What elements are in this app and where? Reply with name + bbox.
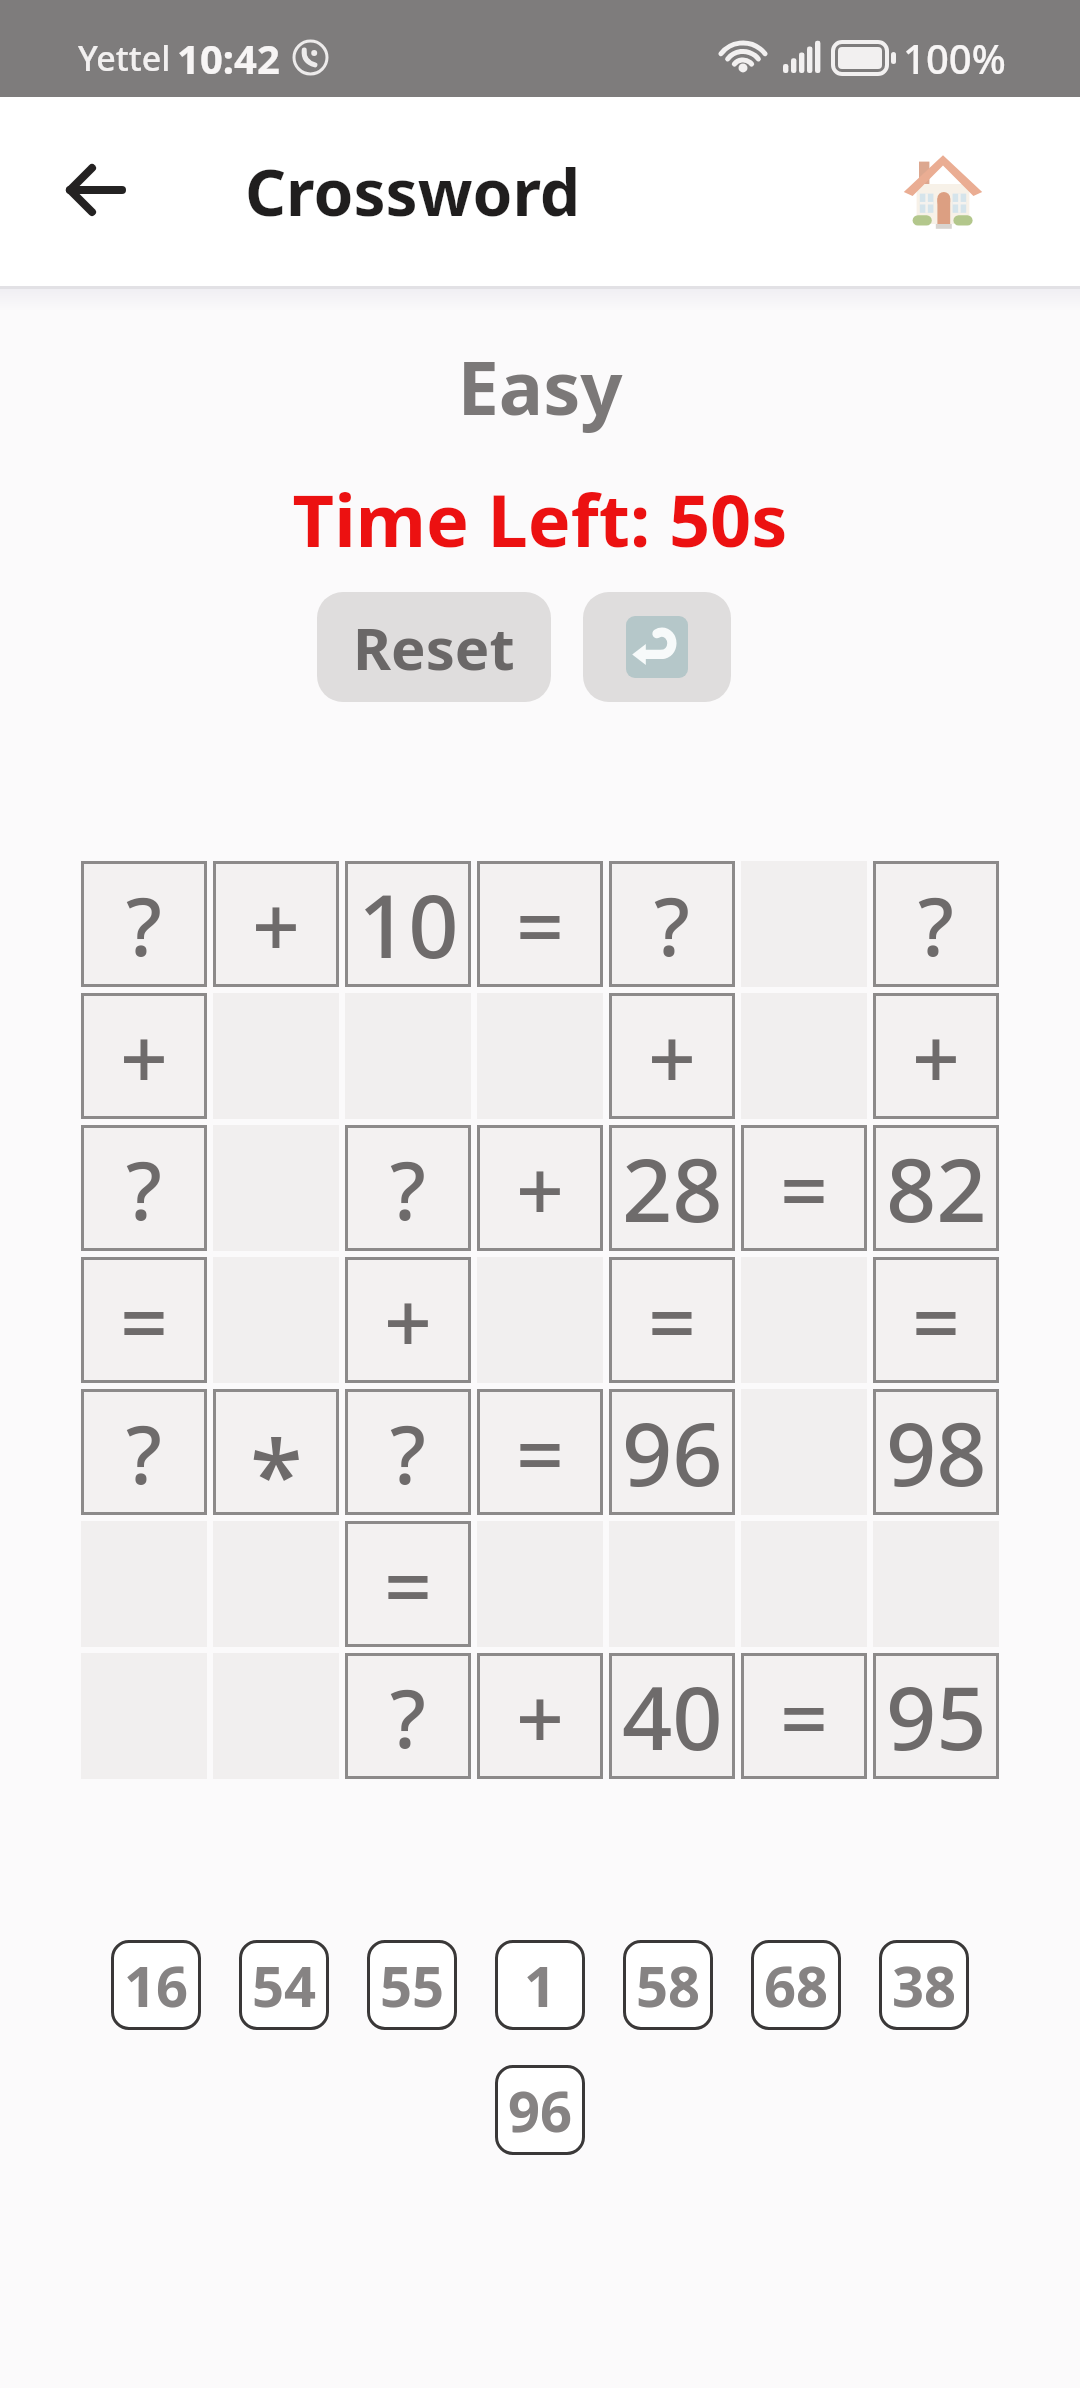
button[interactable]: ? — [345, 1653, 471, 1779]
button[interactable]: ? — [81, 1389, 207, 1515]
staticText: 82 — [886, 1128, 987, 1248]
staticText: 16 — [124, 1947, 189, 2023]
button[interactable]: 96 — [495, 2065, 585, 2155]
staticText: + — [912, 999, 961, 1113]
staticText: 98 — [886, 1392, 987, 1512]
button[interactable]: 10 — [345, 861, 471, 987]
staticText: 28 — [622, 1128, 723, 1248]
button[interactable]: = — [873, 1257, 999, 1383]
button[interactable]: 1 — [495, 1940, 585, 2030]
staticText: ? — [126, 870, 162, 979]
button[interactable]: ? — [81, 861, 207, 987]
staticText: 10 — [358, 864, 459, 984]
button[interactable]: 40 — [609, 1653, 735, 1779]
button[interactable]: 68 — [751, 1940, 841, 2030]
staticText: = — [780, 1131, 829, 1245]
staticText: * — [250, 1407, 303, 1533]
staticText: + — [120, 999, 169, 1113]
button[interactable]: 98 — [873, 1389, 999, 1515]
staticText: ? — [126, 1398, 162, 1507]
button[interactable]: = — [477, 861, 603, 987]
button[interactable]: = — [345, 1521, 471, 1647]
button[interactable]: 55 — [367, 1940, 457, 2030]
button[interactable]: = — [609, 1257, 735, 1383]
button[interactable]: = — [741, 1125, 867, 1251]
button[interactable]: ? — [345, 1125, 471, 1251]
button[interactable]: = — [81, 1257, 207, 1383]
staticText: 55 — [380, 1947, 445, 2023]
button[interactable]: 16 — [111, 1940, 201, 2030]
button[interactable]: * — [213, 1389, 339, 1515]
button[interactable]: + — [213, 861, 339, 987]
staticText: 96 — [508, 2072, 573, 2148]
button[interactable]: = — [477, 1389, 603, 1515]
staticText: = — [648, 1263, 697, 1377]
staticText: 1 — [524, 1947, 557, 2023]
button[interactable]: + — [477, 1125, 603, 1251]
button[interactable]: + — [609, 993, 735, 1119]
staticText: = — [780, 1659, 829, 1773]
button[interactable]: 54 — [239, 1940, 329, 2030]
staticText: + — [252, 867, 301, 981]
staticText: = — [516, 1395, 565, 1509]
button[interactable]: = — [741, 1653, 867, 1779]
staticText: Yettel — [78, 35, 171, 81]
staticText: 40 — [622, 1656, 723, 1776]
button[interactable]: ? — [81, 1125, 207, 1251]
button[interactable] — [64, 158, 128, 222]
staticText: = — [912, 1263, 961, 1377]
staticText: Reset — [353, 608, 515, 687]
button[interactable]: + — [873, 993, 999, 1119]
button[interactable] — [903, 152, 983, 232]
staticText: = — [516, 867, 565, 981]
staticText: ? — [654, 870, 690, 979]
button[interactable]: + — [345, 1257, 471, 1383]
staticText: ? — [390, 1662, 426, 1771]
button[interactable]: 28 — [609, 1125, 735, 1251]
staticText: 10:42 — [177, 31, 280, 85]
button[interactable] — [583, 592, 731, 702]
button[interactable]: ? — [609, 861, 735, 987]
button[interactable]: 82 — [873, 1125, 999, 1251]
button[interactable]: 95 — [873, 1653, 999, 1779]
button[interactable]: 38 — [879, 1940, 969, 2030]
staticText: Easy — [0, 336, 1080, 437]
button[interactable]: ? — [873, 861, 999, 987]
button[interactable]: 58 — [623, 1940, 713, 2030]
staticText: + — [648, 999, 697, 1113]
button[interactable]: ? — [345, 1389, 471, 1515]
staticText: 96 — [622, 1392, 723, 1512]
button[interactable]: 96 — [609, 1389, 735, 1515]
staticText: 95 — [886, 1656, 987, 1776]
staticText: 100% — [903, 31, 1006, 85]
staticText: 54 — [252, 1947, 317, 2023]
staticText: + — [516, 1659, 565, 1773]
staticText: ? — [918, 870, 954, 979]
button[interactable]: + — [81, 993, 207, 1119]
staticText: Time Left: 50s — [0, 470, 1080, 568]
staticText: = — [120, 1263, 169, 1377]
staticText: 68 — [764, 1947, 829, 2023]
staticText: ? — [390, 1134, 426, 1243]
staticText: ? — [126, 1134, 162, 1243]
staticText: 38 — [892, 1947, 957, 2023]
staticText: + — [384, 1263, 433, 1377]
staticText: 58 — [636, 1947, 701, 2023]
button[interactable]: + — [477, 1653, 603, 1779]
staticText: + — [516, 1131, 565, 1245]
button[interactable]: Reset — [317, 592, 551, 702]
staticText: ? — [390, 1398, 426, 1507]
staticText: Crossword — [245, 148, 581, 235]
staticText: = — [384, 1527, 433, 1641]
